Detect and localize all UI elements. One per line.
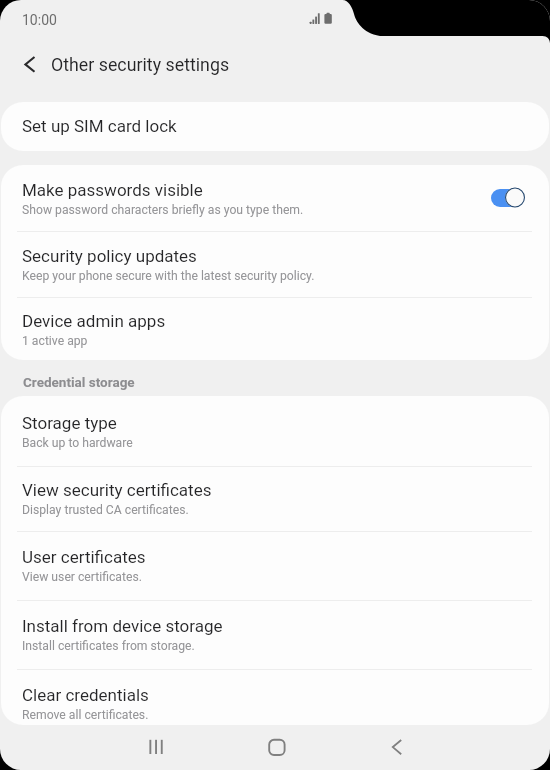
staticText: Security policy updates (22, 246, 197, 266)
button[interactable]: Home (254, 724, 300, 770)
button[interactable]: View security certificates (1, 467, 549, 531)
staticText: Storage type (22, 413, 117, 433)
staticText: Back up to hardware (22, 436, 133, 450)
staticText: Keep your phone secure with the latest s… (22, 269, 315, 283)
staticText: Install from device storage (22, 616, 223, 636)
button[interactable]: Clear credentials (1, 670, 549, 725)
button[interactable]: Set up SIM card lock (1, 102, 549, 151)
staticText: Remove all certificates. (22, 708, 149, 722)
staticText: Set up SIM card lock (22, 116, 177, 136)
button[interactable]: Storage type (1, 396, 549, 466)
button[interactable]: Navigate up (10, 45, 50, 85)
staticText: 1 active app (22, 334, 88, 348)
button[interactable]: Make passwords visible (491, 180, 549, 216)
staticText: Other security settings (51, 54, 230, 75)
staticText: View security certificates (22, 480, 212, 500)
staticText: 10:00 (22, 12, 57, 28)
staticText: Show password characters briefly as you … (22, 203, 304, 217)
button[interactable]: Make passwords visible (1, 165, 549, 231)
button[interactable]: Back (374, 724, 420, 770)
button[interactable]: Security policy updates (1, 232, 549, 297)
staticText: Make passwords visible (22, 180, 203, 200)
staticText: Device admin apps (22, 311, 166, 331)
staticText: Install certificates from storage. (22, 639, 195, 653)
staticText: Credential storage (23, 374, 135, 390)
button[interactable]: Device admin apps (1, 298, 549, 360)
button[interactable]: User certificates (1, 532, 549, 600)
staticText: Display trusted CA certificates. (22, 503, 189, 517)
button[interactable]: Install from device storage (1, 601, 549, 669)
staticText: View user certificates. (22, 570, 142, 584)
staticText: Clear credentials (22, 685, 149, 705)
staticText: User certificates (22, 547, 146, 567)
button[interactable]: Recent apps (133, 724, 179, 770)
